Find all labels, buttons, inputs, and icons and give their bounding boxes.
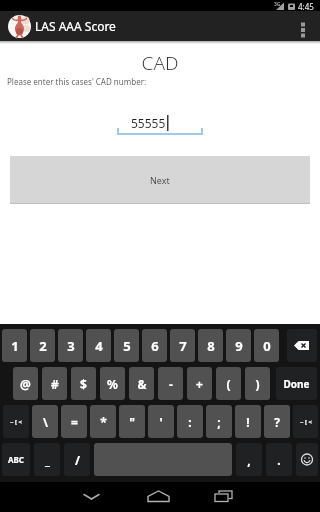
staticText: /: [75, 452, 80, 468]
staticText: ': [159, 414, 163, 430]
button[interactable]: [0, 482, 320, 512]
staticText: ?: [274, 414, 280, 430]
staticText: ;: [217, 414, 221, 430]
button[interactable]: (: [216, 367, 241, 400]
staticText: 6: [151, 337, 159, 355]
staticText: .: [277, 452, 281, 468]
button[interactable]: ~ [ <: [293, 405, 318, 438]
button[interactable]: #: [42, 367, 67, 400]
button[interactable]: ?: [264, 405, 290, 438]
button[interactable]: =: [61, 405, 87, 438]
staticText: 8: [207, 337, 215, 355]
button[interactable]: 8: [198, 329, 223, 362]
staticText: =: [71, 414, 78, 430]
staticText: Next: [150, 174, 170, 186]
button[interactable]: 3: [58, 329, 83, 362]
button[interactable]: 7: [170, 329, 195, 362]
button[interactable]: ': [148, 405, 174, 438]
staticText: ABC: [8, 454, 24, 465]
staticText: &: [137, 376, 147, 392]
staticText: $: [80, 376, 87, 392]
button[interactable]: +: [187, 367, 212, 400]
staticText: *: [100, 414, 107, 430]
button[interactable]: 4: [86, 329, 111, 362]
button[interactable]: :: [177, 405, 203, 438]
button[interactable]: [205, 482, 245, 512]
button[interactable]: ": [119, 405, 145, 438]
button[interactable]: ,: [236, 443, 262, 476]
staticText: 0: [263, 337, 271, 355]
staticText: 1: [11, 337, 19, 355]
button[interactable]: &: [129, 367, 154, 400]
button[interactable]: 6: [142, 329, 167, 362]
button[interactable]: [287, 329, 317, 362]
staticText: -: [169, 376, 173, 392]
button[interactable]: %: [100, 367, 125, 400]
staticText: 3G: [274, 1, 281, 8]
button[interactable]: _: [34, 443, 60, 476]
staticText: 4: [95, 337, 103, 355]
button[interactable]: *: [90, 405, 116, 438]
staticText: CAD: [0, 50, 320, 76]
staticText: #: [51, 376, 59, 392]
button[interactable]: $: [71, 367, 96, 400]
button[interactable]: Done: [276, 367, 317, 400]
staticText: 4:45: [298, 1, 314, 12]
button[interactable]: -: [158, 367, 183, 400]
button[interactable]: Next: [10, 156, 310, 204]
staticText: \: [43, 414, 48, 430]
staticText: 5: [123, 337, 131, 355]
button[interactable]: !: [235, 405, 261, 438]
button[interactable]: @: [13, 367, 38, 400]
button[interactable]: ): [245, 367, 270, 400]
staticText: ": [129, 414, 135, 430]
staticText: @: [20, 376, 31, 392]
staticText: %: [107, 376, 118, 392]
staticText: LAS AAA Score: [35, 18, 116, 34]
button[interactable]: [140, 482, 180, 512]
button[interactable]: \: [32, 405, 58, 438]
staticText: Done: [283, 377, 310, 391]
button[interactable]: 9: [226, 329, 251, 362]
button[interactable]: ~ [ <: [3, 405, 29, 438]
staticText: (: [226, 376, 231, 392]
button[interactable]: [296, 443, 318, 476]
button[interactable]: .: [266, 443, 292, 476]
staticText: ,: [247, 452, 251, 468]
button[interactable]: ;: [206, 405, 232, 438]
button[interactable]: 5: [114, 329, 139, 362]
button[interactable]: ABC: [2, 443, 30, 476]
button[interactable]: 2: [30, 329, 55, 362]
staticText: +: [196, 376, 203, 392]
staticText: ~ [ <: [10, 418, 22, 426]
staticText: 3: [67, 337, 75, 355]
button[interactable]: /: [64, 443, 90, 476]
staticText: 7: [179, 337, 187, 355]
button[interactable]: 0: [254, 329, 279, 362]
button[interactable]: 1: [2, 329, 27, 362]
button[interactable]: [290, 11, 320, 41]
staticText: 55555: [131, 115, 166, 131]
staticText: Please enter this cases' CAD number:: [7, 76, 147, 87]
button[interactable]: 55555: [115, 113, 205, 137]
staticText: _: [45, 452, 50, 468]
staticText: ): [255, 376, 260, 392]
staticText: !: [246, 414, 250, 430]
staticText: 2: [39, 337, 47, 355]
staticText: ~ [ <: [300, 418, 312, 426]
staticText: 9: [235, 337, 243, 355]
staticText: :: [188, 414, 192, 430]
